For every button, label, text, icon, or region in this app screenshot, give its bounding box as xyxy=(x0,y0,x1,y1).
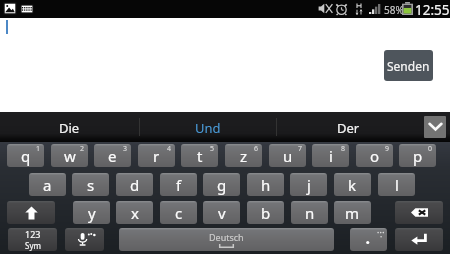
staticText: 8 xyxy=(341,144,346,154)
staticText: 123 xyxy=(25,228,41,240)
staticText: h xyxy=(261,175,271,195)
button[interactable]: c xyxy=(160,201,197,224)
staticText: m xyxy=(345,203,360,223)
button[interactable]: Expand suggestions xyxy=(424,116,446,138)
button[interactable]: r xyxy=(138,144,175,167)
staticText: d xyxy=(130,175,140,195)
button[interactable]: g xyxy=(203,173,240,196)
button[interactable]: i xyxy=(312,144,349,167)
button[interactable]: t xyxy=(181,144,218,167)
button[interactable]: Der xyxy=(277,112,420,142)
staticText: 5 xyxy=(210,144,215,154)
staticText: o xyxy=(370,146,380,166)
staticText: a xyxy=(43,175,52,195)
button[interactable]: f xyxy=(160,173,197,196)
button[interactable]: h xyxy=(247,173,284,196)
staticText: k xyxy=(348,175,357,195)
button[interactable]: v xyxy=(203,201,240,224)
staticText: n xyxy=(305,203,315,223)
staticText: 1 xyxy=(36,144,41,154)
button[interactable]: w xyxy=(51,144,88,167)
staticText: 3 xyxy=(123,144,128,154)
staticText: Der xyxy=(337,119,360,137)
staticText: l xyxy=(395,175,399,195)
staticText: g xyxy=(217,175,227,195)
staticText: c xyxy=(175,203,183,223)
button[interactable]: n xyxy=(291,201,328,224)
button[interactable]: u xyxy=(269,144,306,167)
button[interactable]: l xyxy=(378,173,415,196)
button[interactable]: Enter xyxy=(395,228,443,251)
staticText: e xyxy=(108,146,117,166)
button[interactable]: Symbols xyxy=(8,228,57,251)
staticText: q xyxy=(21,146,31,166)
button[interactable]: y xyxy=(73,201,110,224)
staticText: p xyxy=(413,146,423,166)
staticText: r xyxy=(153,146,160,166)
staticText: Senden xyxy=(387,58,430,74)
button[interactable]: q xyxy=(7,144,44,167)
staticText: 2 xyxy=(80,144,85,154)
button[interactable]: a xyxy=(29,173,66,196)
button[interactable]: k xyxy=(334,173,371,196)
staticText: 9 xyxy=(385,144,390,154)
staticText: i xyxy=(329,146,333,166)
button[interactable]: Shift xyxy=(7,201,55,224)
button[interactable]: b xyxy=(247,201,284,224)
button[interactable]: Senden xyxy=(384,50,433,81)
staticText: 4 xyxy=(167,144,172,154)
staticText: s xyxy=(87,175,95,195)
staticText: y xyxy=(88,203,96,223)
button[interactable]: Period xyxy=(350,228,387,251)
staticText: 7 xyxy=(298,144,303,154)
staticText: v xyxy=(218,203,226,223)
button[interactable]: Backspace xyxy=(395,201,443,224)
button[interactable]: Voice input xyxy=(65,228,104,251)
staticText: Deutsch xyxy=(209,231,244,243)
button[interactable]: o xyxy=(356,144,393,167)
staticText: z xyxy=(240,146,248,166)
staticText: 0 xyxy=(428,144,433,154)
button[interactable]: Und xyxy=(140,112,276,142)
staticText: u xyxy=(283,146,293,166)
staticText: Sym xyxy=(25,240,41,251)
staticText: 12:55 xyxy=(415,1,450,19)
staticText: t xyxy=(197,146,203,166)
button[interactable]: s xyxy=(72,173,109,196)
button[interactable]: x xyxy=(116,201,153,224)
staticText: x xyxy=(131,203,139,223)
staticText: 58% xyxy=(384,3,404,17)
staticText: b xyxy=(261,203,271,223)
staticText: 6 xyxy=(254,144,259,154)
staticText: w xyxy=(64,146,76,166)
staticText: j xyxy=(307,175,311,195)
button[interactable]: p xyxy=(399,144,436,167)
button[interactable]: e xyxy=(94,144,131,167)
button[interactable]: z xyxy=(225,144,262,167)
button[interactable]: j xyxy=(290,173,327,196)
button[interactable]: Space xyxy=(119,228,334,251)
staticText: Und xyxy=(195,119,221,137)
button[interactable]: Die xyxy=(0,112,139,142)
button[interactable]: m xyxy=(334,201,371,224)
staticText: f xyxy=(176,175,182,195)
button[interactable]: d xyxy=(116,173,153,196)
staticText: Die xyxy=(59,119,80,137)
